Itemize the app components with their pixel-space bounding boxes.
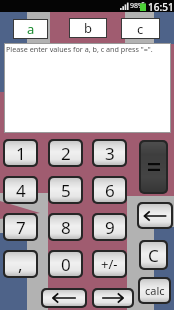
button[interactable]: 0 xyxy=(48,250,83,278)
button[interactable]: 8 xyxy=(48,213,83,241)
staticText: b xyxy=(84,19,92,37)
button[interactable]: Move right xyxy=(92,288,134,308)
button[interactable]: Move left xyxy=(41,288,87,308)
staticText: calc xyxy=(145,283,165,298)
button[interactable]: 7 xyxy=(3,213,38,241)
staticText: 3 xyxy=(105,142,115,165)
button[interactable]: 1 xyxy=(3,139,38,167)
staticText: 98% xyxy=(130,1,144,11)
button[interactable]: , xyxy=(3,250,38,278)
staticText: 8 xyxy=(61,216,71,239)
staticText: 9 xyxy=(105,216,115,239)
staticText: c xyxy=(137,20,144,38)
button[interactable]: +/- xyxy=(92,250,127,278)
button[interactable]: Backspace xyxy=(137,202,173,229)
button[interactable]: 9 xyxy=(92,213,127,241)
staticText: 2 xyxy=(61,142,71,165)
staticText: 1 xyxy=(16,142,26,165)
button[interactable]: 2 xyxy=(48,139,83,167)
staticText: 16:51 xyxy=(148,0,174,14)
button[interactable]: c xyxy=(122,19,159,38)
staticText: 7 xyxy=(16,216,26,239)
staticText: , xyxy=(18,253,23,276)
button[interactable]: 5 xyxy=(48,176,83,204)
button[interactable]: a xyxy=(14,20,47,38)
staticText: a xyxy=(27,20,35,38)
staticText: 6 xyxy=(105,179,115,202)
button[interactable]: Equals xyxy=(139,140,168,194)
button[interactable]: 4 xyxy=(3,176,38,204)
button[interactable]: C xyxy=(139,240,168,270)
staticText: +/- xyxy=(101,255,118,273)
staticText: C xyxy=(148,244,159,267)
button[interactable]: 3 xyxy=(92,139,127,167)
staticText: 0 xyxy=(61,253,71,276)
button[interactable]: Please enter values for a, b, c and pres… xyxy=(5,44,170,132)
staticText: 4 xyxy=(16,179,26,202)
button[interactable]: 6 xyxy=(92,176,127,204)
staticText: 5 xyxy=(61,179,71,202)
button[interactable]: b xyxy=(70,19,106,37)
staticText: Please enter values for a, b, c and pres… xyxy=(6,44,153,54)
button[interactable]: calc xyxy=(138,277,171,304)
